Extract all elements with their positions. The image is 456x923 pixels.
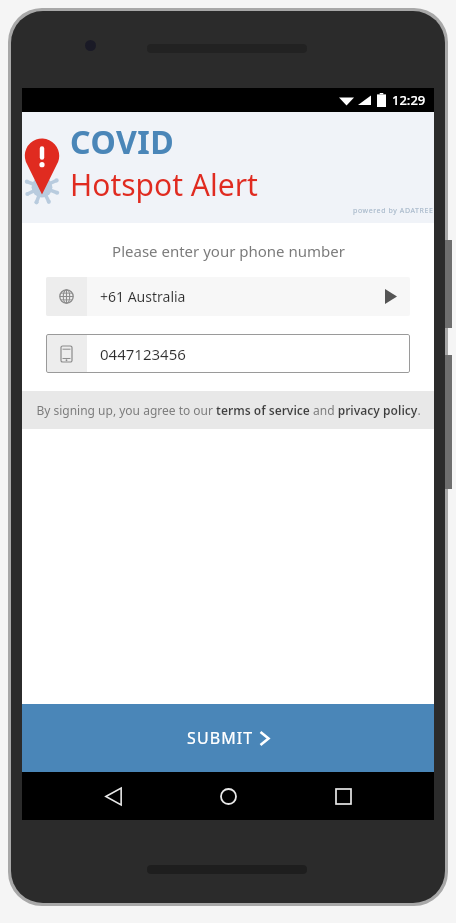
button[interactable]: 0447123456 bbox=[46, 334, 410, 373]
button[interactable]: Home bbox=[204, 772, 252, 820]
button[interactable]: Back bbox=[89, 772, 137, 820]
staticText: +61 Australia bbox=[100, 287, 186, 306]
staticText: Hotspot Alert bbox=[70, 164, 258, 205]
staticText: Please enter your phone number bbox=[112, 241, 345, 261]
staticText: 0447123456 bbox=[100, 344, 186, 364]
staticText: 12:29 bbox=[392, 91, 426, 109]
staticText: SUBMIT bbox=[187, 727, 254, 749]
staticText: powered by ADATREE bbox=[353, 206, 434, 216]
button[interactable]: Recent apps bbox=[319, 772, 367, 820]
button[interactable]: SUBMIT bbox=[22, 704, 434, 772]
button[interactable]: +61 Australia bbox=[46, 277, 410, 316]
staticText: COVID bbox=[70, 120, 175, 164]
staticText: By signing up, you agree to our terms of… bbox=[36, 402, 421, 418]
